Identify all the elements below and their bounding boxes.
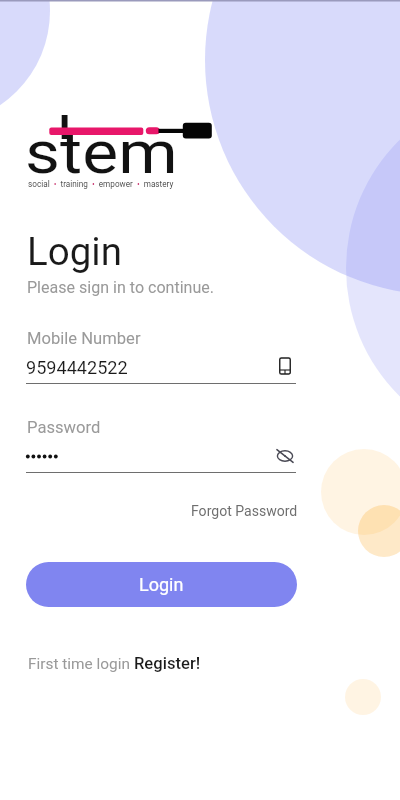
staticText: 9594442522 [26,357,128,378]
button[interactable]: Login [26,562,297,607]
staticText: Login [27,229,122,274]
staticText: Password [27,418,101,437]
staticText: Login [139,574,184,595]
staticText: Mobile Number [27,329,141,348]
button[interactable]: Mobile number [278,356,292,376]
button[interactable]: Toggle password visibility [276,448,294,464]
button[interactable]: Register! [134,654,201,673]
staticText: social • training • empower • mastery [28,179,174,189]
button[interactable]: Forgot Password [191,503,298,519]
staticText: Please sign in to continue. [27,278,215,297]
staticText: stem [25,117,179,187]
staticText: First time login [28,655,134,673]
